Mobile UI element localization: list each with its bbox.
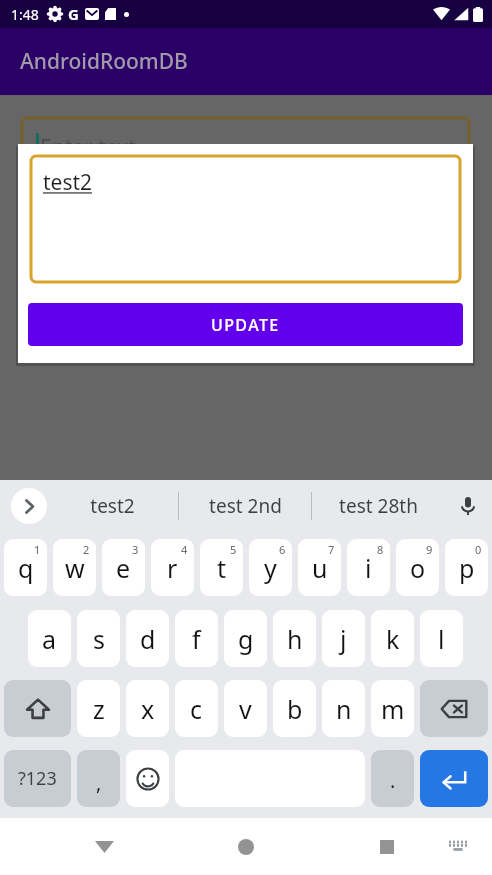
staticText: a <box>42 622 57 656</box>
button[interactable]: g <box>224 610 267 667</box>
button[interactable]: x <box>126 680 169 737</box>
staticText: j <box>340 622 347 656</box>
button[interactable]: f <box>175 610 218 667</box>
staticText: 0 <box>475 542 482 557</box>
staticText: o <box>410 551 426 585</box>
button[interactable]: r <box>151 539 194 596</box>
staticText: AndroidRoomDB <box>20 47 188 76</box>
button[interactable]: test2 <box>47 480 178 532</box>
button[interactable]: n <box>322 680 365 737</box>
button[interactable]: UPDATE <box>28 303 463 346</box>
staticText: p <box>459 551 475 585</box>
staticText: 6 <box>279 542 286 557</box>
staticText: . <box>390 767 396 794</box>
button[interactable]: c <box>175 680 218 737</box>
staticText: q <box>18 551 34 585</box>
staticText: , <box>96 769 102 796</box>
button[interactable]: test 28th <box>312 480 444 532</box>
staticText: t <box>217 551 227 585</box>
staticText: 4 <box>181 542 188 557</box>
staticText: 2 <box>83 542 90 557</box>
button[interactable]: m <box>371 680 414 737</box>
button[interactable]: Recents <box>365 818 409 875</box>
staticText: e <box>116 551 131 585</box>
staticText: d <box>140 622 156 656</box>
staticText: Enter text <box>40 133 136 162</box>
staticText: z <box>93 692 105 726</box>
staticText: n <box>336 692 352 726</box>
staticText: f <box>192 622 201 656</box>
staticText: u <box>312 551 328 585</box>
button[interactable]: Home <box>224 818 268 875</box>
button[interactable]: k <box>371 610 414 667</box>
staticText: r <box>167 551 178 585</box>
staticText: test2 <box>90 493 135 519</box>
button[interactable]: e <box>102 539 145 596</box>
button[interactable]: Shift <box>4 680 71 737</box>
staticText: test 2nd <box>209 493 282 519</box>
staticText: v <box>239 692 252 726</box>
button[interactable]: Emoji <box>126 750 169 807</box>
staticText: UPDATE <box>211 314 280 336</box>
button[interactable]: test 2nd <box>179 480 311 532</box>
staticText: 3 <box>132 542 139 557</box>
button[interactable]: Backspace <box>420 680 488 737</box>
staticText: x <box>141 692 155 726</box>
staticText: g <box>238 622 254 656</box>
staticText: b <box>287 692 303 726</box>
button[interactable]: p <box>445 539 488 596</box>
staticText: h <box>287 622 303 656</box>
staticText: m <box>381 692 405 726</box>
button[interactable]: Enter <box>420 750 488 807</box>
button[interactable]: l <box>420 610 463 667</box>
staticText: k <box>386 622 400 656</box>
button[interactable]: a <box>28 610 71 667</box>
button[interactable]: s <box>77 610 120 667</box>
button[interactable]: b <box>273 680 316 737</box>
staticText: 8 <box>377 542 384 557</box>
button[interactable]: u <box>298 539 341 596</box>
button[interactable]: Voice input <box>444 480 492 532</box>
button[interactable]: i <box>347 539 390 596</box>
staticText: test2 <box>43 168 93 197</box>
button[interactable]: v <box>224 680 267 737</box>
button[interactable]: Back <box>82 818 126 875</box>
button[interactable]: test2 <box>31 156 460 282</box>
staticText: 5 <box>230 542 237 557</box>
staticText: test 28th <box>339 493 418 519</box>
button[interactable]: o <box>396 539 439 596</box>
button[interactable]: Switch keyboard <box>436 818 480 875</box>
button[interactable]: y <box>249 539 292 596</box>
staticText: y <box>264 551 277 585</box>
button[interactable]: t <box>200 539 243 596</box>
staticText: c <box>190 692 203 726</box>
staticText: 9 <box>426 542 433 557</box>
button[interactable]: h <box>273 610 316 667</box>
staticText: G <box>68 4 79 24</box>
button[interactable]: , <box>77 750 120 807</box>
staticText: 1 <box>34 542 41 557</box>
staticText: i <box>365 551 372 585</box>
staticText: 7 <box>328 542 335 557</box>
button[interactable]: ?123 <box>4 750 71 807</box>
button[interactable]: j <box>322 610 365 667</box>
staticText: 1:48 <box>11 5 39 24</box>
button[interactable]: More suggestions <box>11 488 47 524</box>
button[interactable]: w <box>53 539 96 596</box>
button[interactable]: z <box>77 680 120 737</box>
button[interactable]: . <box>371 750 414 807</box>
button[interactable]: q <box>4 539 47 596</box>
staticText: w <box>65 551 85 585</box>
button[interactable]: d <box>126 610 169 667</box>
staticText: l <box>438 622 445 656</box>
staticText: ?123 <box>18 766 57 791</box>
staticText: s <box>93 622 105 656</box>
